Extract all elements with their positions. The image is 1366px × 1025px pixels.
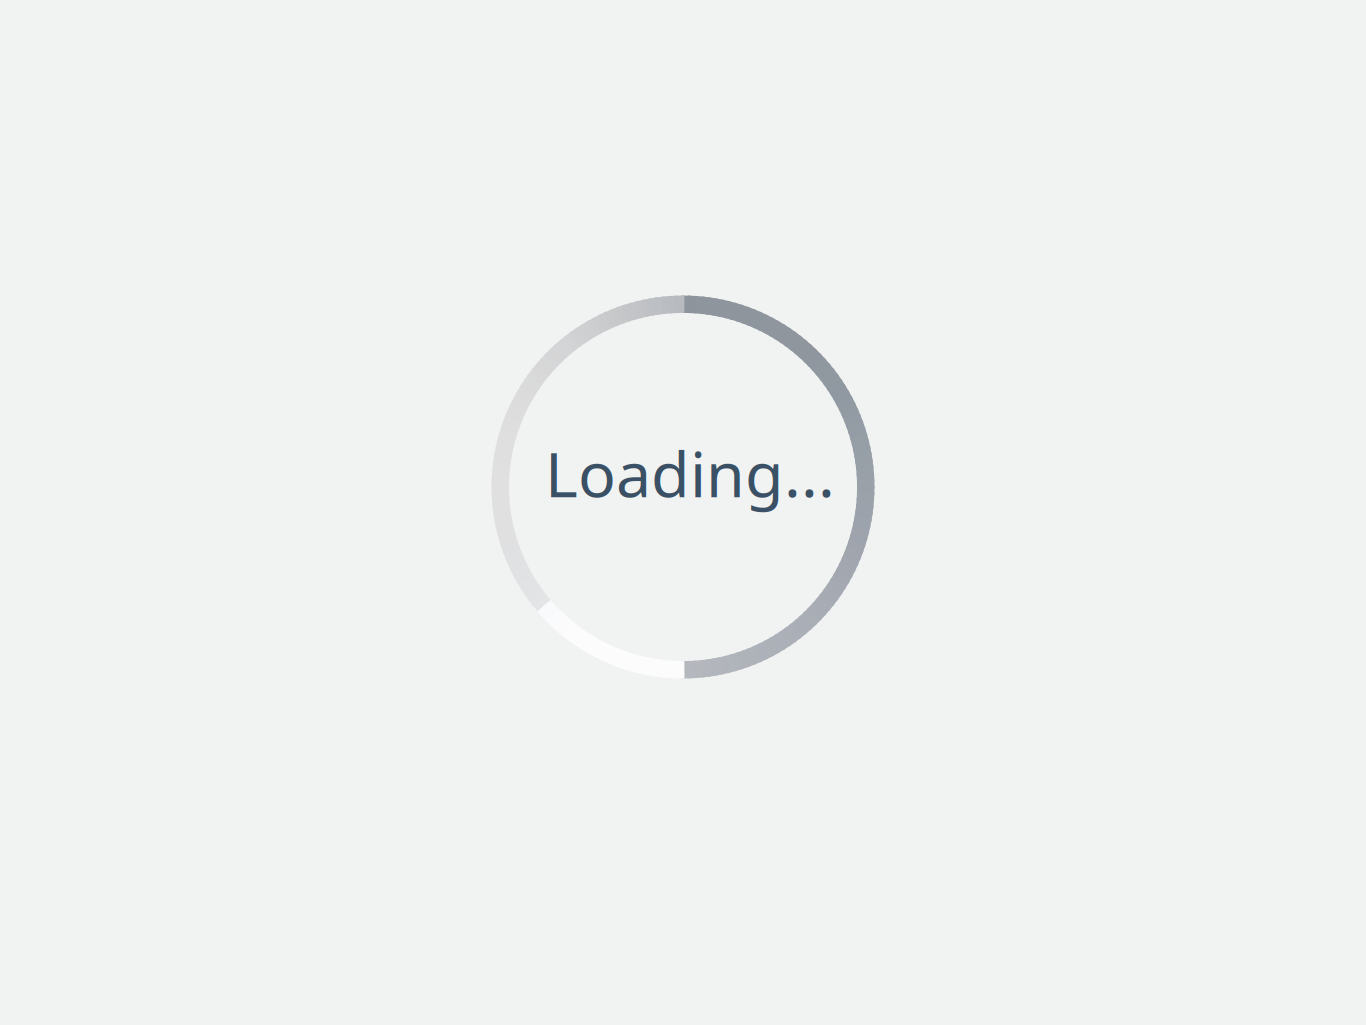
staticText: Loading... (545, 431, 835, 515)
